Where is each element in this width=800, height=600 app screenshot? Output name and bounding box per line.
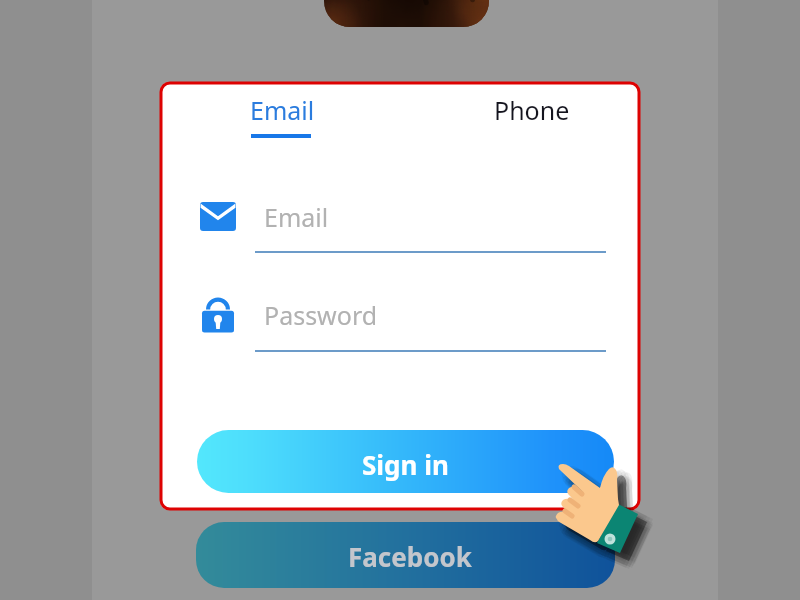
staticText: Email	[264, 200, 329, 234]
button[interactable]: Phone	[477, 82, 587, 137]
button[interactable]: Email	[255, 190, 606, 253]
staticText: Phone	[494, 93, 570, 127]
other: Password	[202, 297, 235, 334]
button[interactable]: Email	[230, 82, 335, 137]
staticText: Password	[264, 298, 378, 332]
other: Email address	[200, 202, 236, 231]
button[interactable]: Sign in	[197, 430, 614, 493]
staticText: Email	[250, 93, 315, 127]
button[interactable]: Password	[255, 288, 606, 351]
button[interactable]: Facebook	[196, 522, 615, 588]
staticText: Facebook	[348, 539, 472, 574]
staticText: Sign in	[362, 447, 449, 482]
